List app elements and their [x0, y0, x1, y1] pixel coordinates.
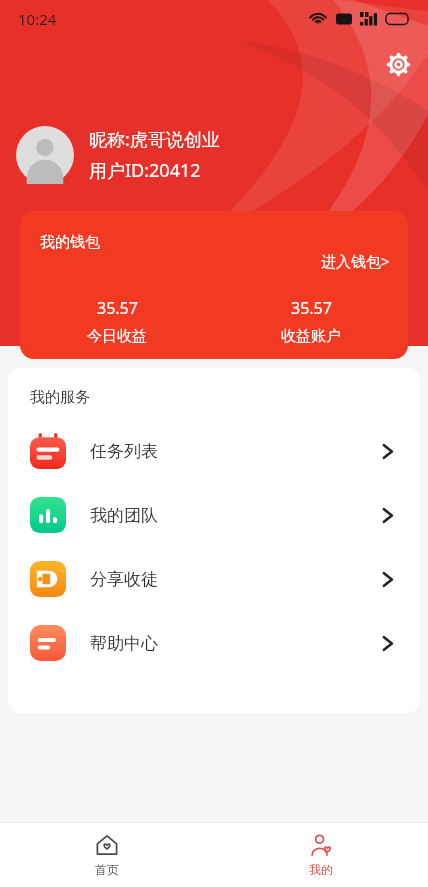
staticText: 我的服务 — [30, 388, 90, 407]
staticText: 昵称:虎哥说创业 — [89, 127, 220, 152]
staticText: 帮助中心 — [90, 633, 158, 654]
button[interactable]: Settings — [380, 46, 416, 82]
button[interactable]: 昵称:虎哥说创业 — [16, 126, 220, 184]
button[interactable]: 我的 — [214, 823, 428, 887]
button[interactable]: 进入钱包> — [321, 251, 390, 271]
button[interactable]: 首页 — [0, 823, 214, 887]
button[interactable]: 帮助中心 — [8, 611, 420, 675]
button[interactable]: 我的团队 — [8, 483, 420, 547]
staticText: 任务列表 — [90, 441, 158, 462]
staticText: 收益账户 — [281, 327, 341, 346]
staticText: 我的团队 — [90, 505, 158, 526]
staticText: 分享收徒 — [90, 569, 158, 590]
staticText: 进入钱包> — [321, 251, 390, 271]
staticText: 我的钱包 — [40, 233, 100, 252]
button[interactable]: 我的钱包 — [20, 211, 408, 359]
button[interactable]: 分享收徒 — [8, 547, 420, 611]
staticText: 35.57 — [291, 297, 332, 319]
staticText: 用户ID:20412 — [89, 158, 201, 183]
staticText: 10:24 — [18, 9, 57, 29]
staticText: 今日收益 — [87, 327, 147, 346]
button[interactable]: 任务列表 — [8, 419, 420, 483]
staticText: 我的 — [309, 862, 333, 877]
staticText: 首页 — [95, 862, 119, 877]
staticText: 35.57 — [97, 297, 138, 319]
